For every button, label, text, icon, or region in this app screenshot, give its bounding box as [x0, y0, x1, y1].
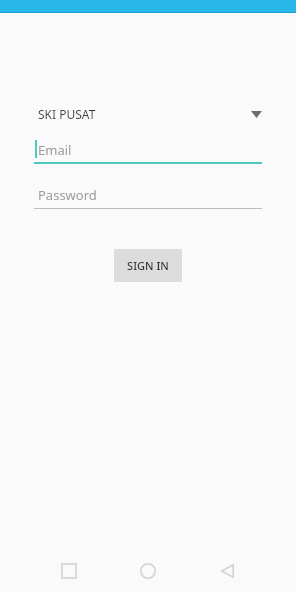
button[interactable]: Email	[34, 136, 262, 164]
button[interactable]: Password	[34, 181, 262, 209]
button[interactable]: Recent apps	[47, 550, 91, 592]
staticText: Email	[38, 141, 72, 159]
staticText: Password	[38, 186, 97, 204]
staticText: SKI PUSAT	[38, 106, 96, 122]
button[interactable]: SIGN IN	[114, 249, 182, 282]
button[interactable]: Back	[205, 550, 249, 592]
button[interactable]: SKI PUSAT	[34, 100, 262, 128]
button[interactable]: Home	[126, 550, 170, 592]
staticText: SIGN IN	[127, 258, 169, 273]
